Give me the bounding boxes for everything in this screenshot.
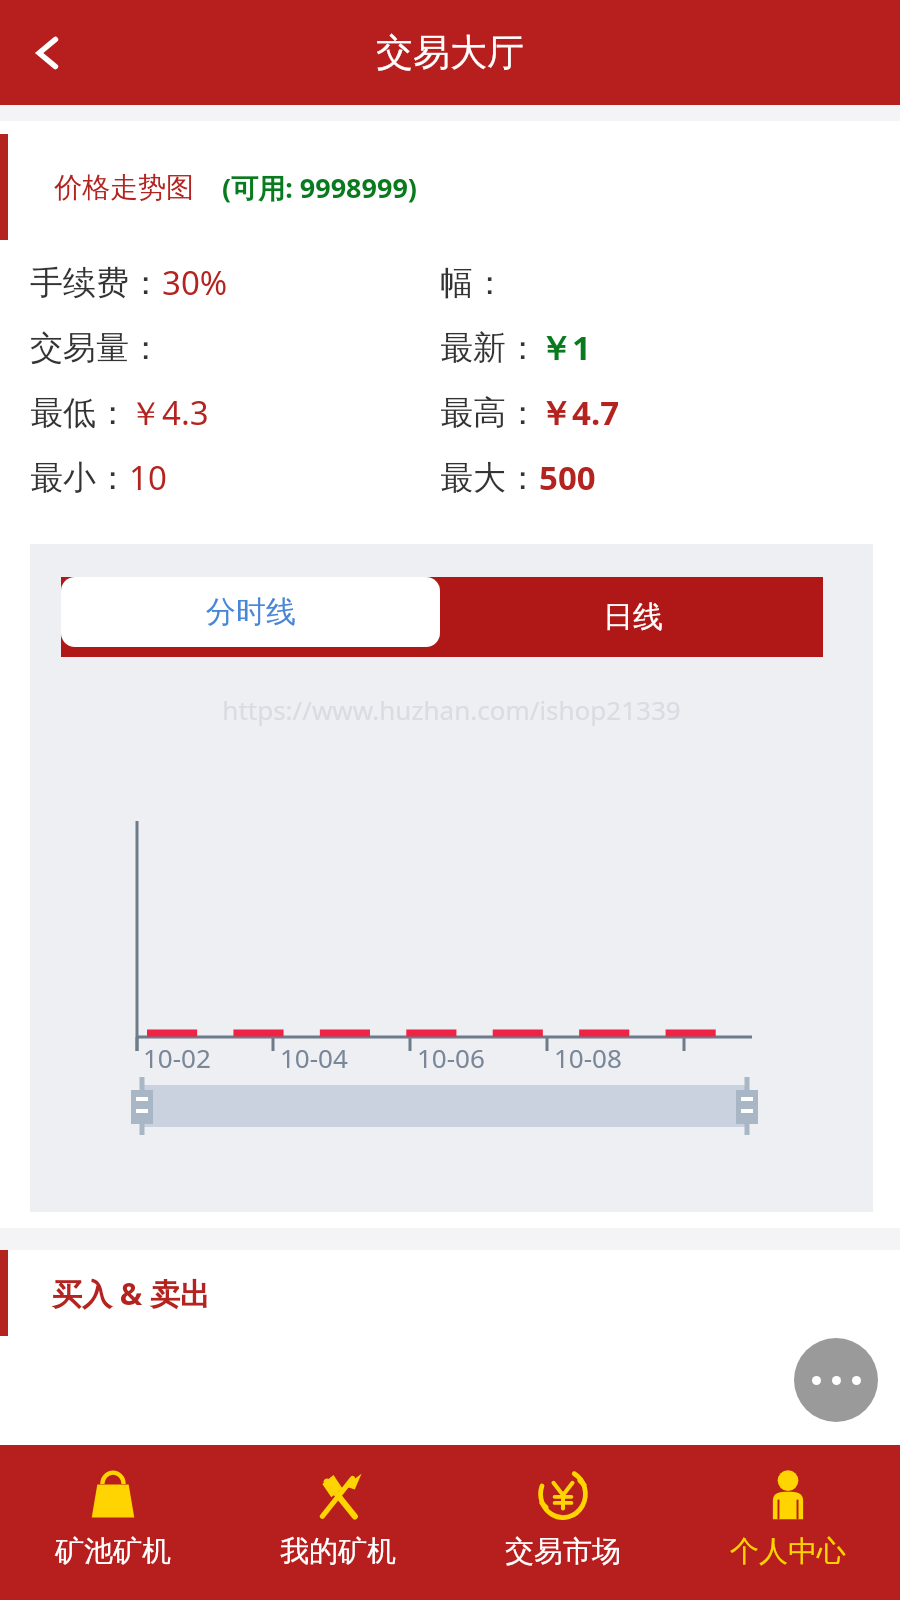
staticText: ￥4.7 [539, 390, 620, 435]
staticText: 10-06 [417, 1040, 485, 1075]
staticText: 500 [539, 455, 596, 500]
staticText: https://www.huzhan.com/ishop21339 [222, 692, 681, 727]
staticText: 手续费： [30, 262, 162, 304]
staticText: 交易量： [30, 327, 162, 369]
staticText: 交易大厅 [376, 29, 524, 76]
staticText: 10-02 [143, 1040, 211, 1075]
button[interactable]: Back [10, 15, 86, 91]
staticText: 幅： [440, 262, 506, 304]
staticText: 矿池矿机 [55, 1533, 171, 1570]
button[interactable]: 矿池矿机 [0, 1445, 225, 1600]
staticText: (可用: 9998999) [222, 169, 418, 206]
staticText: 最低： [30, 392, 129, 434]
staticText: 10-04 [280, 1040, 348, 1075]
button[interactable]: 日线 [442, 577, 823, 657]
staticText: ￥4.3 [129, 390, 209, 435]
button[interactable]: 交易市场 [450, 1445, 675, 1600]
staticText: 30% [162, 260, 228, 305]
staticText: 我的矿机 [280, 1533, 396, 1570]
staticText: 最高： [440, 392, 539, 434]
staticText: 买入 & 卖出 [52, 1273, 211, 1314]
button[interactable]: More options [794, 1338, 878, 1422]
staticText: 最新： [440, 327, 539, 369]
staticText: 个人中心 [730, 1533, 846, 1570]
button[interactable]: 分时线 [61, 577, 440, 647]
staticText: 价格走势图 [54, 170, 194, 205]
button[interactable]: 个人中心 [675, 1445, 900, 1600]
staticText: 最大： [440, 457, 539, 499]
staticText: 10 [129, 455, 167, 500]
staticText: ￥1 [539, 325, 591, 370]
staticText: 交易市场 [505, 1533, 621, 1570]
staticText: 10-08 [554, 1040, 622, 1075]
staticText: 分时线 [206, 593, 296, 631]
button[interactable]: 我的矿机 [225, 1445, 450, 1600]
staticText: 日线 [603, 598, 663, 636]
staticText: 最小： [30, 457, 129, 499]
